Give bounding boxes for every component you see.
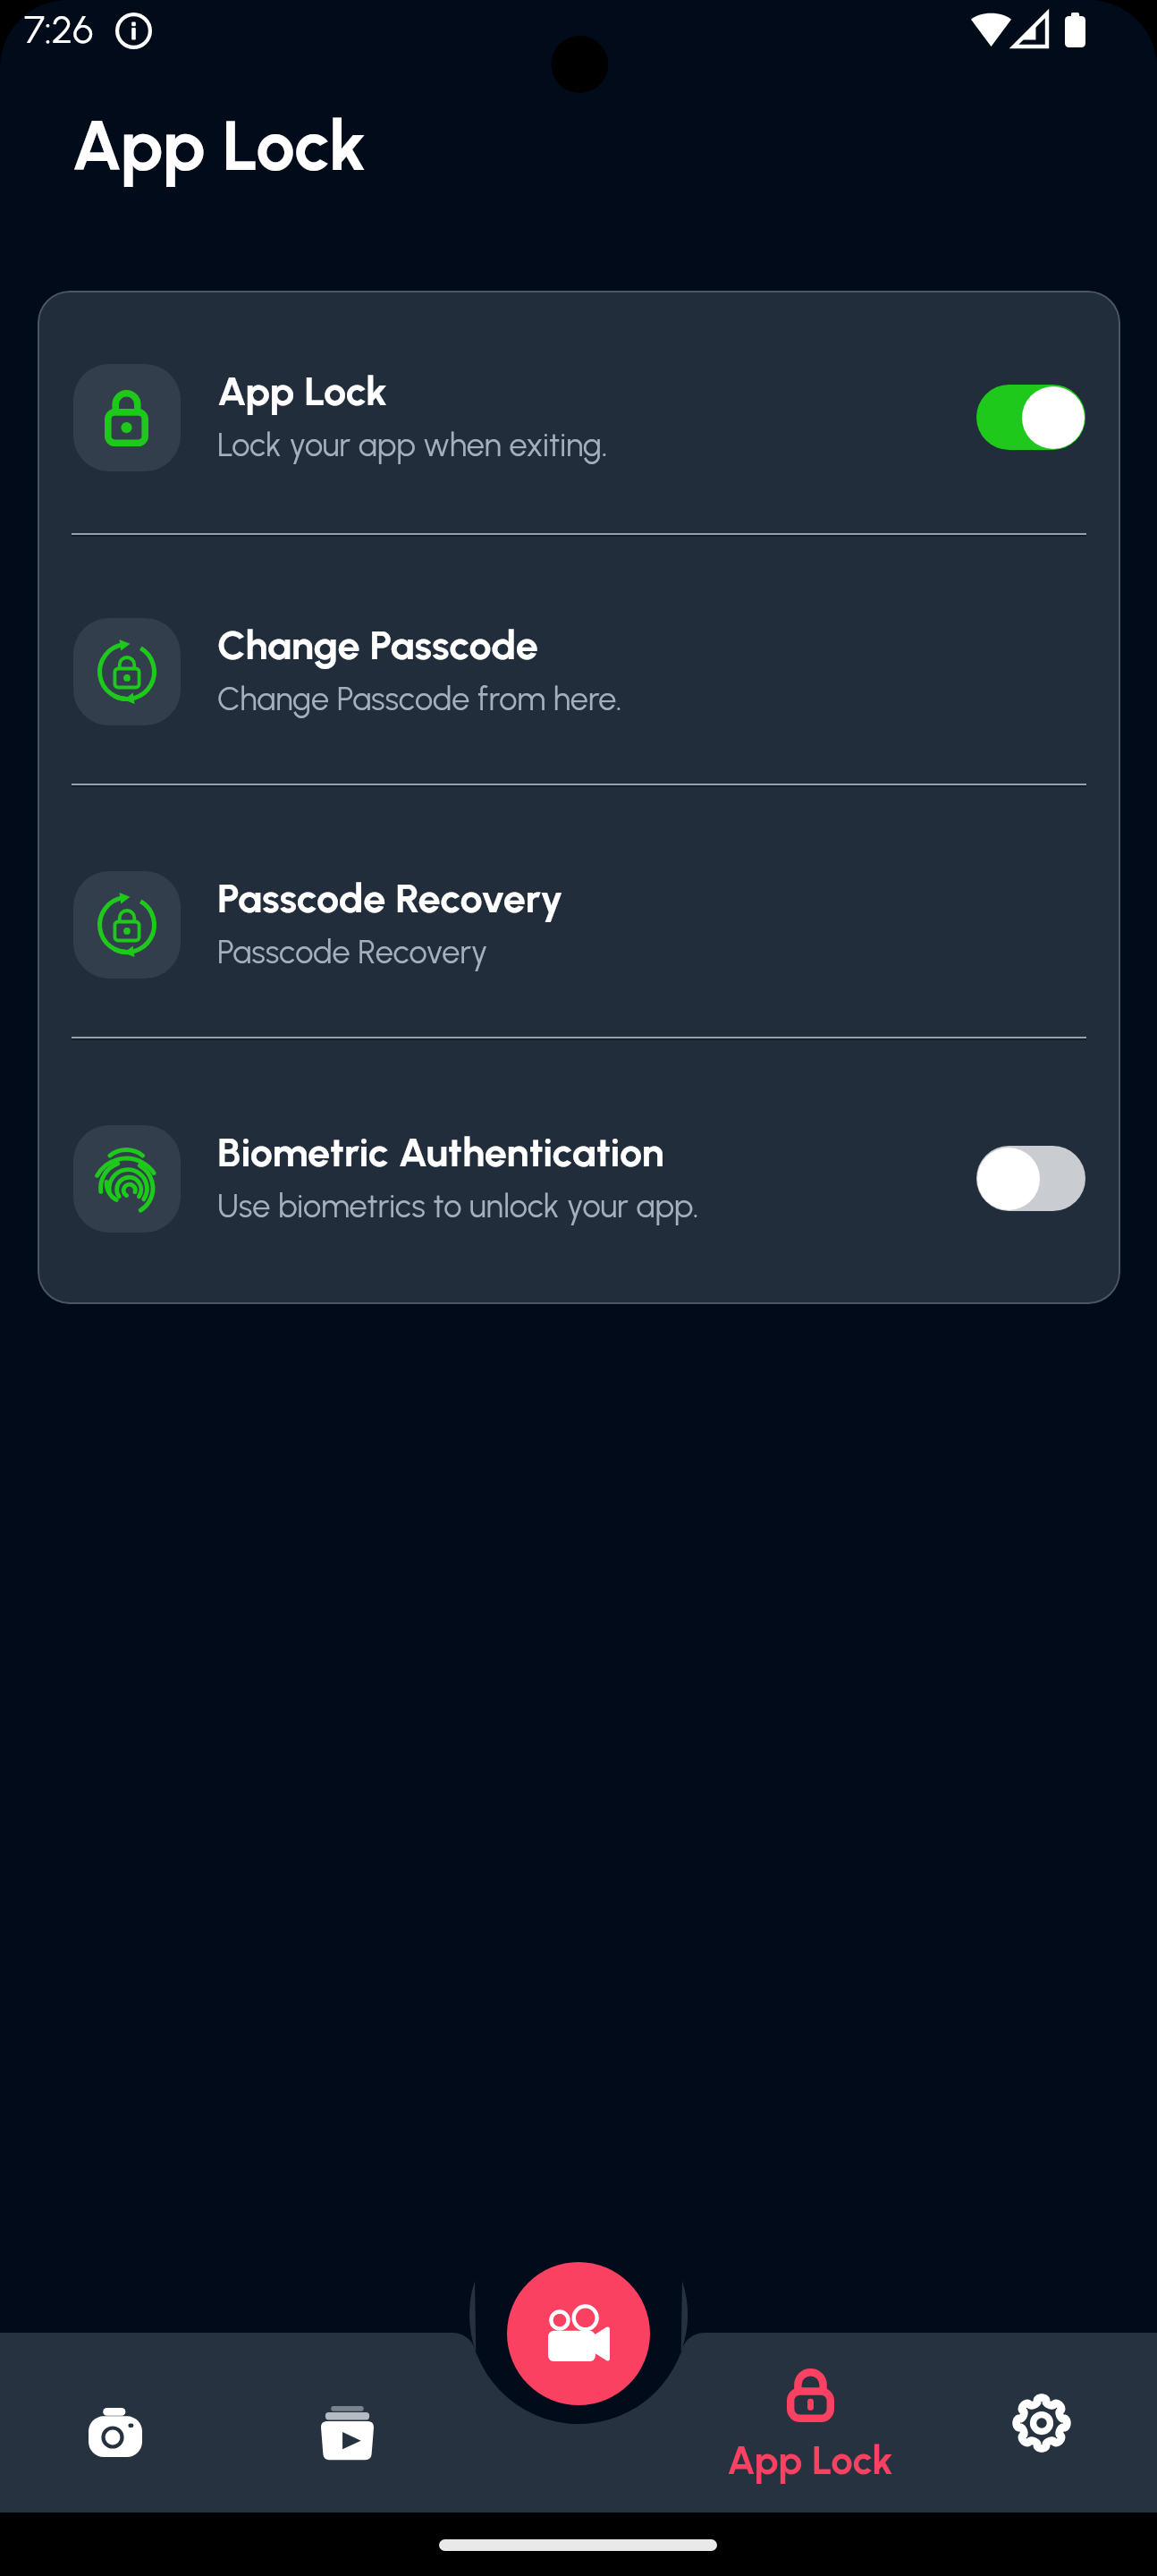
button[interactable]: Change Passcode [38,545,1120,799]
staticText: 7:26 [24,6,94,53]
button[interactable]: Settings [989,2370,1094,2476]
button[interactable] [976,1146,1085,1211]
staticText: Use biometrics to unlock your app. [217,1187,699,1225]
staticText: Biometric Authentication [217,1128,664,1176]
staticText: Passcode Recovery [217,874,563,922]
button[interactable]: App Lock [703,2368,917,2484]
staticText: Change Passcode from here. [217,680,622,718]
staticText: Change Passcode [217,621,538,669]
button[interactable]: App Lock [38,291,1120,545]
button[interactable]: Videos [294,2380,400,2486]
staticText: App Lock [72,104,367,188]
button[interactable]: Record video [507,2262,650,2405]
button[interactable]: Passcode Recovery [38,798,1120,1052]
button[interactable]: Biometric Authentication [38,1052,1120,1304]
staticText: App Lock [727,2436,893,2484]
staticText: Passcode Recovery [217,933,488,971]
staticText: App Lock [217,367,388,415]
button[interactable]: Camera [63,2379,168,2485]
button[interactable] [976,385,1085,450]
staticText: Lock your app when exiting. [217,426,608,464]
